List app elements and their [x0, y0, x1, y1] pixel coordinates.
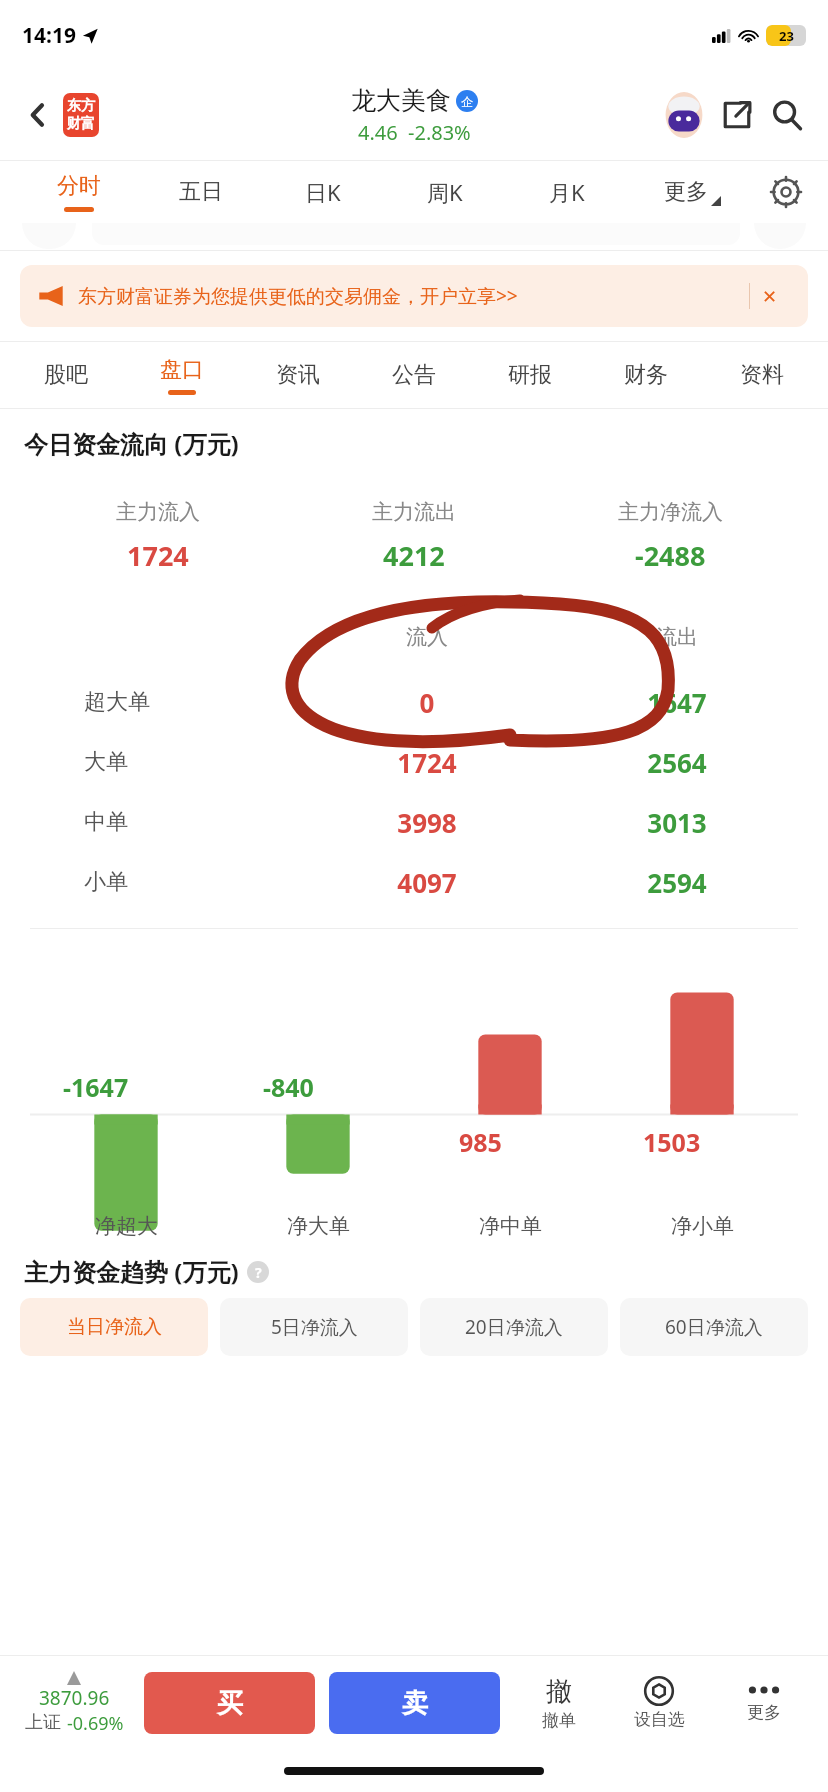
- staticText: 撤单: [542, 1710, 576, 1731]
- staticText: 5日净流入: [271, 1314, 358, 1340]
- button[interactable]: 大单: [0, 732, 828, 792]
- staticText: 企: [461, 94, 473, 109]
- staticText: 主力流出: [372, 499, 456, 525]
- staticText: 盘口: [160, 356, 204, 384]
- button[interactable]: 分时: [18, 161, 140, 223]
- staticText: 月K: [549, 177, 585, 207]
- button[interactable]: Help: [247, 1261, 269, 1283]
- staticText: 资讯: [276, 361, 320, 389]
- staticText: 财富: [67, 115, 95, 133]
- staticText: 0: [302, 685, 552, 720]
- button[interactable]: 3870.96: [14, 1671, 134, 1736]
- staticText: 净超大: [95, 1213, 158, 1239]
- button[interactable]: 东方财富证券为您提供更低的交易佣金，开户立享>>: [20, 265, 808, 327]
- staticText: 1503: [643, 1125, 701, 1159]
- staticText: 3870.96: [39, 1685, 110, 1711]
- staticText: 985: [459, 1125, 502, 1159]
- staticText: 14:19: [22, 21, 76, 50]
- staticText: -2488: [635, 537, 706, 574]
- button[interactable]: Back: [18, 95, 58, 135]
- staticText: 研报: [508, 361, 552, 389]
- button[interactable]: 60日净流入: [620, 1298, 808, 1356]
- button[interactable]: 更多: [628, 161, 756, 223]
- staticText: ✕: [762, 286, 778, 307]
- button[interactable]: 当日净流入: [20, 1298, 208, 1356]
- button[interactable]: 买: [144, 1672, 315, 1734]
- button[interactable]: 卖: [329, 1672, 500, 1734]
- staticText: 4097: [302, 865, 552, 900]
- button[interactable]: Close: [750, 265, 790, 327]
- staticText: 主力资金趋势 (万元): [24, 1255, 239, 1288]
- staticText: 4.46: [358, 119, 398, 146]
- button[interactable]: 超大单: [0, 672, 828, 732]
- staticText: 超大单: [84, 688, 150, 716]
- staticText: 净小单: [671, 1213, 734, 1239]
- staticText: 小单: [84, 868, 128, 896]
- button[interactable]: 更多: [714, 1684, 814, 1723]
- staticText: 龙大美食: [351, 85, 451, 116]
- button[interactable]: 五日: [140, 161, 262, 223]
- staticText: 买: [217, 1687, 243, 1720]
- staticText: 分时: [57, 172, 101, 200]
- button[interactable]: 日K: [262, 161, 384, 223]
- staticText: -0.69%: [67, 1711, 124, 1736]
- button[interactable]: 设自选: [604, 1676, 714, 1730]
- staticText: 东方财富证券为您提供更低的交易佣金，开户立享>>: [78, 283, 518, 309]
- button[interactable]: Settings: [756, 161, 816, 223]
- staticText: 1647: [552, 685, 802, 720]
- button[interactable]: 撤: [514, 1675, 604, 1731]
- button[interactable]: 研报: [472, 342, 588, 408]
- button[interactable]: Search: [764, 92, 810, 138]
- staticText: 3998: [302, 805, 552, 840]
- button[interactable]: 小单: [0, 852, 828, 912]
- button[interactable]: 资讯: [240, 342, 356, 408]
- staticText: -1647: [63, 1070, 129, 1104]
- staticText: 财务: [624, 361, 668, 389]
- staticText: 周K: [427, 177, 463, 207]
- staticText: 当日净流入: [67, 1315, 162, 1339]
- staticText: 60日净流入: [665, 1314, 763, 1340]
- staticText: 公告: [392, 361, 436, 389]
- staticText: -840: [263, 1070, 314, 1104]
- button[interactable]: 股吧: [8, 342, 124, 408]
- button[interactable]: 20日净流入: [420, 1298, 608, 1356]
- staticText: 上证: [25, 1711, 61, 1734]
- staticText: 卖: [402, 1687, 428, 1720]
- staticText: ?: [255, 1263, 262, 1282]
- staticText: 2564: [552, 745, 802, 780]
- staticText: 大单: [84, 748, 128, 776]
- button[interactable]: 5日净流入: [220, 1298, 408, 1356]
- button[interactable]: 资料: [704, 342, 820, 408]
- button[interactable]: 主力流入: [30, 476, 798, 596]
- staticText: 2594: [552, 865, 802, 900]
- staticText: 主力流入: [116, 499, 200, 525]
- staticText: 股吧: [44, 361, 88, 389]
- staticText: 撤: [546, 1675, 572, 1708]
- button[interactable]: Profile: [660, 91, 708, 139]
- staticText: 主力净流入: [618, 499, 723, 525]
- staticText: 日K: [305, 177, 341, 207]
- button[interactable]: 公告: [356, 342, 472, 408]
- staticText: 设自选: [634, 1709, 685, 1730]
- staticText: 20日净流入: [465, 1314, 563, 1340]
- button[interactable]: 东方财富: [58, 92, 104, 138]
- staticText: 更多: [664, 178, 708, 206]
- staticText: 1724: [127, 537, 189, 574]
- staticText: 净大单: [287, 1213, 350, 1239]
- staticText: 资料: [740, 361, 784, 389]
- staticText: 中单: [84, 808, 128, 836]
- button[interactable]: 盘口: [124, 342, 240, 408]
- staticText: 1724: [302, 745, 552, 780]
- button[interactable]: 周K: [384, 161, 506, 223]
- staticText: 更多: [747, 1702, 781, 1723]
- button[interactable]: 中单: [0, 792, 828, 852]
- staticText: 五日: [179, 178, 223, 206]
- button[interactable]: 财务: [588, 342, 704, 408]
- button[interactable]: 月K: [506, 161, 628, 223]
- staticText: 23: [779, 27, 794, 45]
- staticText: 3013: [552, 805, 802, 840]
- staticText: 今日资金流向 (万元): [24, 427, 239, 460]
- staticText: 东方: [67, 97, 95, 115]
- button[interactable]: Share: [714, 92, 760, 138]
- staticText: 流入: [302, 624, 552, 650]
